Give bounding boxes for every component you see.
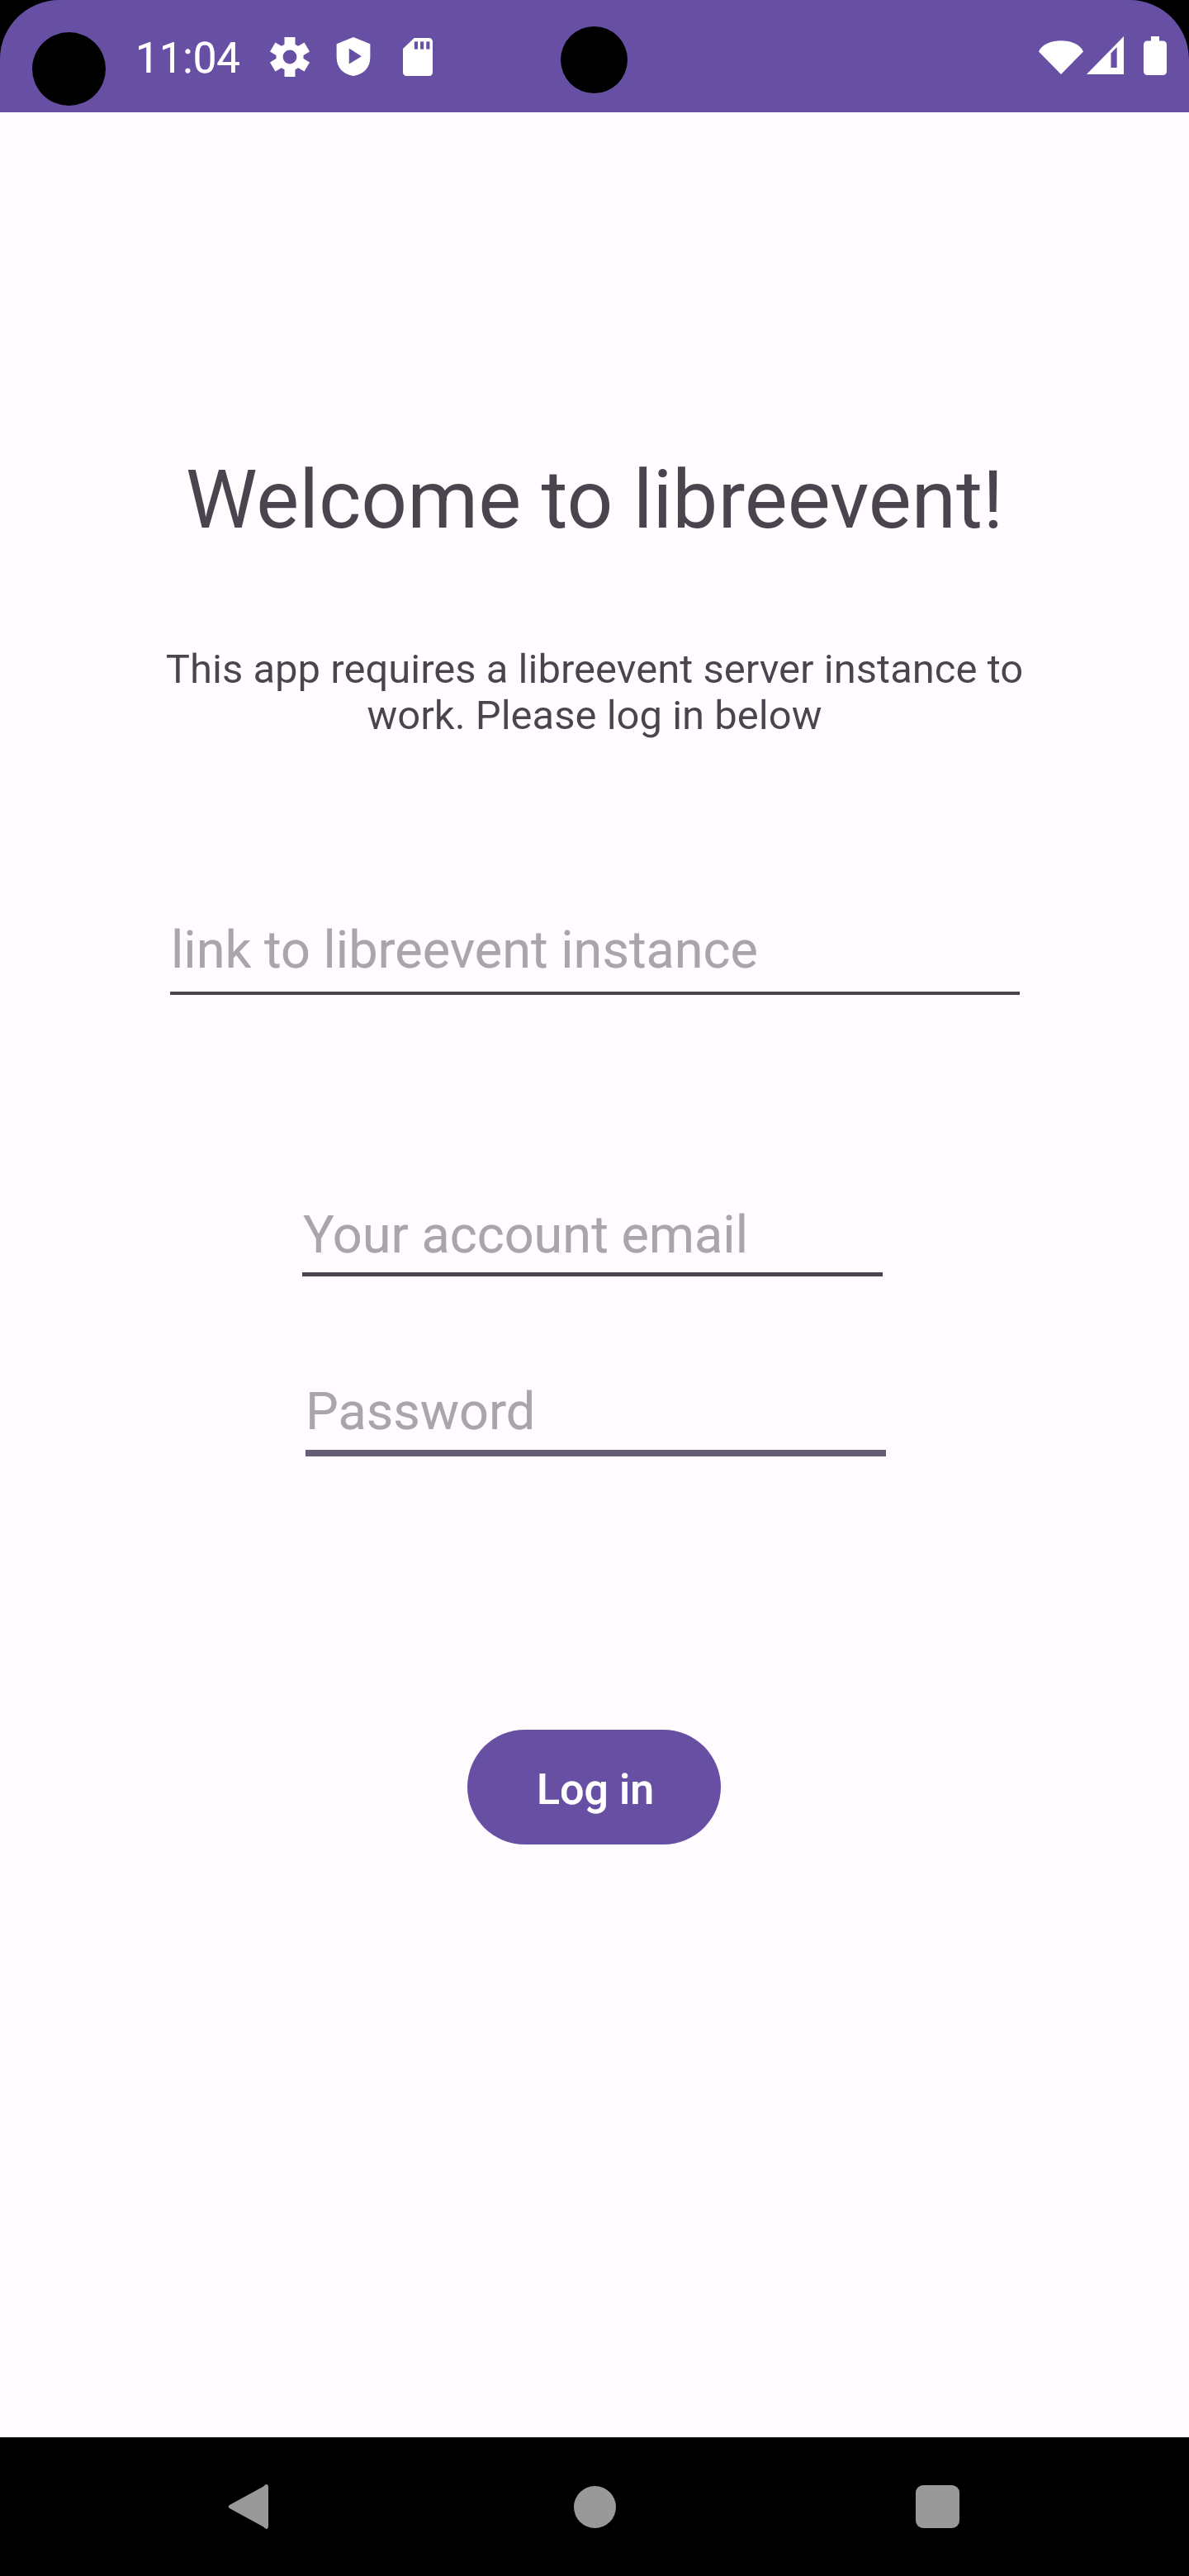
staticText: Log in bbox=[537, 1764, 655, 1815]
staticText: Password bbox=[306, 1381, 536, 1442]
button[interactable]: Recents bbox=[868, 2437, 1007, 2576]
staticText: This app requires a libreevent server in… bbox=[157, 646, 1032, 739]
staticText: Your account email bbox=[303, 1205, 748, 1266]
staticText: 11:04 bbox=[135, 34, 241, 83]
button[interactable]: Back bbox=[178, 2437, 317, 2576]
button[interactable]: Home bbox=[525, 2437, 664, 2576]
button[interactable]: Password bbox=[306, 1381, 886, 1456]
button[interactable]: link to libreevent instance bbox=[170, 920, 1020, 995]
staticText: link to libreevent instance bbox=[171, 920, 758, 981]
button[interactable]: Log in bbox=[467, 1730, 721, 1844]
button[interactable]: Your account email bbox=[302, 1205, 883, 1276]
staticText: Welcome to libreevent! bbox=[0, 452, 1189, 547]
